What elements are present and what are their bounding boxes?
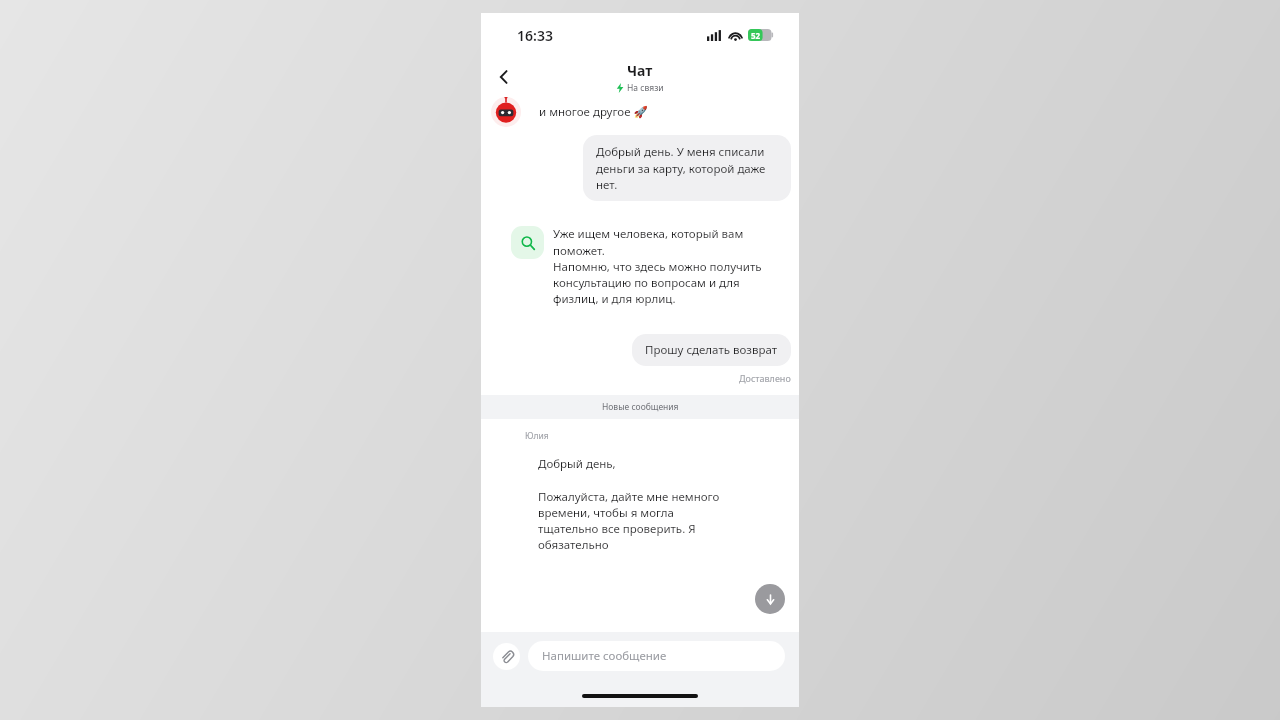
button[interactable]: Attach file [493, 643, 520, 670]
staticText: Напишите сообщение [542, 648, 667, 664]
button[interactable]: Добрый день, Пожалуйста, дайте мне немно… [525, 446, 733, 562]
staticText: На связи [627, 82, 664, 94]
staticText: 16:33 [517, 26, 553, 45]
button[interactable]: Прошу сделать возврат [632, 334, 791, 366]
staticText: и многое другое 🚀 [539, 104, 648, 120]
staticText: Чат [627, 61, 653, 80]
staticText: Добрый день, Пожалуйста, дайте мне немно… [538, 456, 720, 552]
button[interactable]: Уже ищем человека, который вам поможет. … [499, 214, 781, 318]
staticText: Прошу сделать возврат [645, 342, 778, 358]
staticText: 52 [751, 30, 761, 41]
staticText: Добрый день. У меня списали деньги за ка… [596, 144, 778, 192]
staticText: Доставлено [739, 372, 791, 384]
button[interactable]: Добрый день. У меня списали деньги за ка… [583, 135, 791, 201]
button[interactable]: Scroll to bottom [755, 584, 785, 614]
staticText: Новые сообщения [602, 401, 679, 413]
staticText: Уже ищем человека, который вам поможет. … [553, 226, 769, 306]
staticText: Юлия [525, 430, 549, 442]
button[interactable]: Back [487, 60, 521, 94]
button[interactable]: Напишите сообщение [528, 641, 785, 671]
